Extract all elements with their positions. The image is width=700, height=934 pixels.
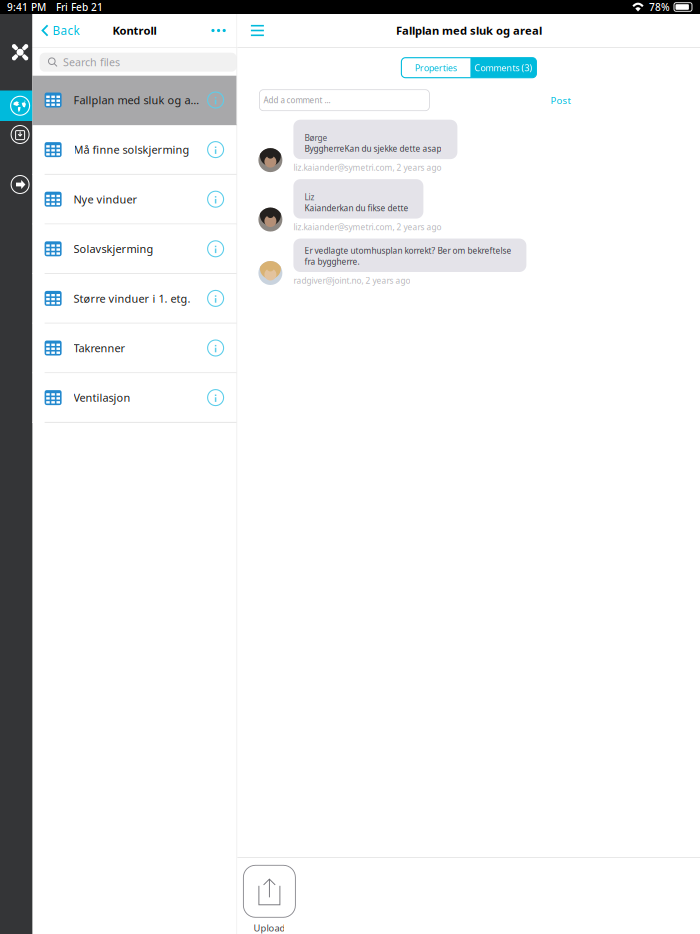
staticText: ByggherreKan du sjekke dette asap (304, 143, 441, 154)
staticText: Ventilasjon (74, 390, 131, 405)
staticText: Nye vinduer (74, 192, 138, 206)
button[interactable]: Post (540, 91, 580, 110)
button[interactable]: Home (0, 14, 33, 90)
staticText: Fri Feb 21 (56, 0, 103, 14)
button[interactable]: Ventilasjon (33, 373, 237, 423)
staticText: Kaianderkan du fikse dette (304, 203, 408, 214)
button[interactable]: Properties (401, 58, 470, 78)
staticText: Properties (415, 62, 457, 74)
staticText: Kontroll (113, 23, 157, 38)
button[interactable]: Back (33, 14, 80, 47)
button[interactable]: Saved (0, 121, 33, 148)
button[interactable]: Sign out (0, 148, 33, 221)
staticText: fra byggherre. (304, 256, 359, 267)
staticText: liz.kaiander@symetri.com, 2 years ago (293, 162, 441, 173)
staticText: Er vedlagte utomhusplan korrekt? Ber om … (304, 245, 511, 256)
staticText: Search files (63, 55, 120, 69)
staticText: Add a comment ... (263, 95, 330, 105)
staticText: Må finne solskjerming (74, 142, 190, 157)
staticText: Børge (304, 132, 327, 143)
button[interactable]: Menu (237, 14, 277, 47)
button[interactable]: Comments (3) (470, 58, 536, 78)
button[interactable]: Upload (237, 858, 295, 934)
button[interactable]: Takrenner (33, 324, 237, 373)
button[interactable]: Explore (0, 90, 33, 121)
button[interactable]: Search files (33, 48, 237, 76)
staticText: Solavskjerming (74, 241, 154, 256)
staticText: 9:41 PM (7, 0, 46, 14)
staticText: Takrenner (74, 341, 126, 355)
button[interactable]: Større vinduer i 1. etg. (33, 274, 237, 324)
staticText: liz.kaiander@symetri.com, 2 years ago (293, 222, 441, 233)
button[interactable]: Nye vinduer (33, 175, 237, 224)
staticText: Liz (304, 192, 314, 203)
staticText: Fallplan med sluk og areal (396, 23, 542, 38)
button[interactable]: Solavskjerming (33, 224, 237, 274)
staticText: 78% (649, 0, 670, 14)
staticText: Comments (3) (474, 62, 532, 74)
staticText: Større vinduer i 1. etg. (74, 291, 191, 306)
staticText: Upload (253, 922, 285, 934)
staticText: Post (550, 94, 570, 106)
button[interactable]: Add a comment ... (259, 90, 429, 111)
button[interactable]: Fallplan med sluk og a… (33, 76, 237, 125)
staticText: Fallplan med sluk og a… (74, 93, 200, 107)
staticText: Back (53, 23, 80, 38)
button[interactable]: Må finne solskjerming (33, 125, 237, 175)
button[interactable]: More (201, 14, 237, 47)
staticText: radgiver@joint.no, 2 years ago (293, 275, 410, 286)
